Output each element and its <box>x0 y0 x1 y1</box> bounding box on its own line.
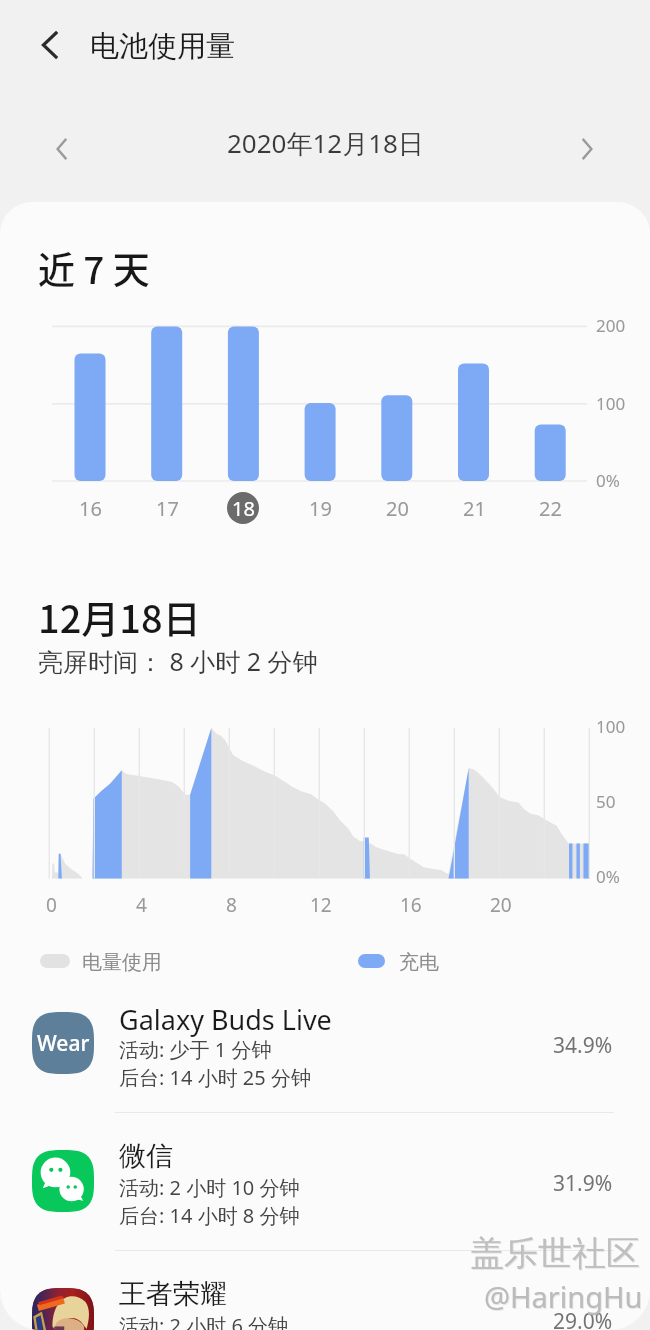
staticText: 近 7 天 <box>38 241 150 295</box>
staticText: 电量使用 <box>82 950 162 975</box>
staticText: 电池使用量 <box>90 28 235 65</box>
staticText: 12月18日 <box>38 589 201 644</box>
staticText: 16 <box>79 495 102 522</box>
button[interactable]: 微信 <box>0 1136 650 1256</box>
staticText: 50 <box>596 790 616 813</box>
staticText: 20 <box>490 892 512 918</box>
staticText: 100 <box>596 715 626 738</box>
staticText: 12 <box>310 892 332 918</box>
staticText: 4 <box>136 892 147 918</box>
button[interactable]: Wear <box>0 998 650 1118</box>
staticText: 0% <box>596 865 620 888</box>
staticText: 0% <box>596 469 620 492</box>
staticText: 微信 <box>119 1139 173 1173</box>
staticText: 后台: 14 小时 8 分钟 <box>119 1202 300 1229</box>
staticText: 100 <box>596 392 626 415</box>
staticText: 16 <box>400 892 422 918</box>
staticText: 19 <box>309 495 332 522</box>
staticText: 后台: 14 小时 25 分钟 <box>119 1064 311 1091</box>
staticText: 2020年12月18日 <box>227 125 424 161</box>
button[interactable]: 王者荣耀 <box>0 1274 650 1330</box>
staticText: Wear <box>37 1029 90 1058</box>
staticText: 31.9% <box>553 1169 613 1198</box>
staticText: Galaxy Buds Live <box>119 1001 332 1038</box>
staticText: 20 <box>386 495 409 522</box>
staticText: 活动: 少于 1 分钟 <box>119 1036 272 1063</box>
staticText: 200 <box>596 314 626 337</box>
staticText: @HaringHu <box>485 1278 644 1317</box>
staticText: 34.9% <box>553 1031 613 1060</box>
staticText: @HaringHu <box>484 1277 643 1316</box>
staticText: 0 <box>46 892 57 918</box>
staticText: 王者荣耀 <box>119 1277 227 1311</box>
staticText: 亮屏时间： 8 小时 2 分钟 <box>38 644 318 678</box>
staticText: 盖乐世社区 <box>470 1232 640 1275</box>
staticText: 21 <box>463 495 486 522</box>
button[interactable]: Back <box>20 15 80 75</box>
staticText: 18 <box>232 495 255 522</box>
staticText: 活动: 2 小时 10 分钟 <box>119 1174 300 1201</box>
staticText: 充电 <box>399 950 439 975</box>
staticText: 盖乐世社区 <box>471 1233 641 1276</box>
staticText: 29.0% <box>553 1307 613 1330</box>
staticText: 22 <box>539 495 562 522</box>
staticText: 8 <box>226 892 237 918</box>
button[interactable]: Previous day <box>30 117 94 181</box>
staticText: 17 <box>156 495 179 522</box>
staticText: 活动: 2 小时 6 分钟 <box>119 1312 289 1330</box>
button[interactable]: Next day <box>555 117 619 181</box>
